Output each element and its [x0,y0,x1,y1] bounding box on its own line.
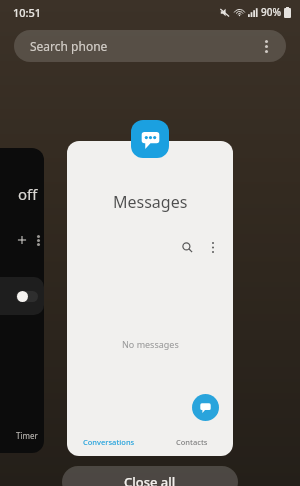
staticText: 90% [261,5,281,19]
staticText: Contacts [176,437,208,447]
staticText: Search phone [30,38,108,54]
button[interactable]: Messages [67,141,233,456]
button[interactable]: Messages app icon [131,120,169,158]
button[interactable]: off [0,148,44,453]
button[interactable]: More options [203,237,223,257]
staticText: No messages [122,338,179,350]
button[interactable]: Search phone [14,30,286,62]
staticText: Close all [124,473,176,486]
staticText: Messages [113,191,188,213]
staticText: 10:51 [13,5,42,20]
button[interactable]: New conversation [192,394,219,421]
button[interactable]: Contacts [150,428,233,456]
staticText: Timer [16,430,38,441]
staticText: off [18,184,38,204]
button[interactable]: More options [254,34,278,58]
button[interactable]: Search [177,237,197,257]
button[interactable]: Conversations [67,428,150,456]
button[interactable]: Close all [62,466,238,486]
staticText: Conversations [83,437,135,447]
button[interactable] [0,277,44,315]
